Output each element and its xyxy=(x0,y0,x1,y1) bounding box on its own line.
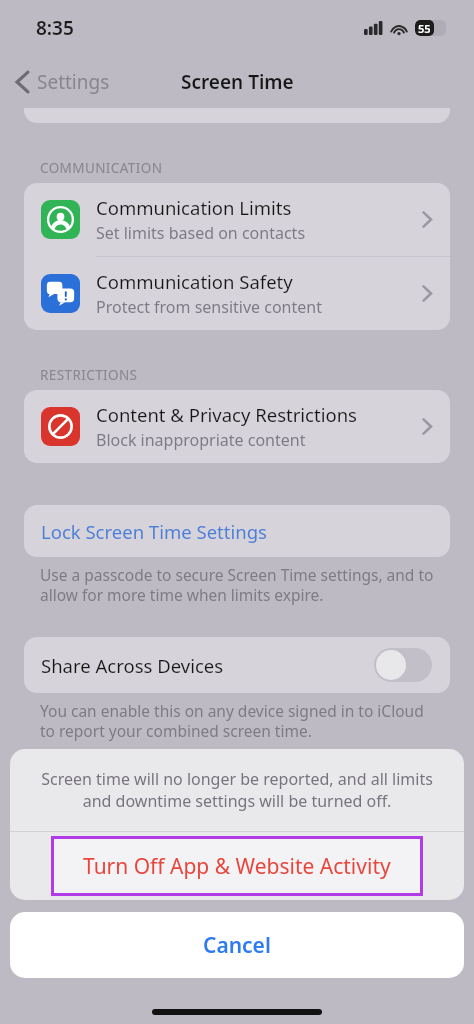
staticText: Cancel xyxy=(203,931,271,960)
staticText: 55 xyxy=(418,21,431,36)
button[interactable]: Communication Safety xyxy=(24,257,450,330)
staticText: Settings xyxy=(37,69,110,95)
staticText: Use a passcode to secure Screen Time set… xyxy=(40,564,434,605)
staticText: Screen Time xyxy=(181,69,294,95)
button[interactable]: Turn Off App & Website Activity xyxy=(10,832,464,900)
button[interactable]: Lock Screen Time Settings xyxy=(24,505,450,557)
button[interactable]: Content & Privacy Restrictions xyxy=(24,390,450,463)
staticText: RESTRICTIONS xyxy=(40,366,138,384)
button[interactable]: Share Across Devices xyxy=(24,637,450,693)
button[interactable]: Settings xyxy=(12,65,114,99)
staticText: Protect from sensitive content xyxy=(96,296,322,318)
staticText: Lock Screen Time Settings xyxy=(41,519,267,544)
staticText: Block inappropriate content xyxy=(96,429,306,451)
staticText: Communication Limits xyxy=(96,195,292,220)
staticText: Set Up Screen Time for Family xyxy=(41,783,301,808)
button[interactable]: Cancel xyxy=(10,912,464,978)
staticText: 8:35 xyxy=(36,15,74,41)
staticText: You can enable this on any device signed… xyxy=(40,700,434,741)
staticText: Screen time will no longer be reported, … xyxy=(32,768,442,812)
staticText: Turn Off App & Website Activity xyxy=(83,852,391,881)
staticText: Content & Privacy Restrictions xyxy=(96,402,357,427)
staticText: Communication Safety xyxy=(96,269,293,294)
staticText: Share Across Devices xyxy=(41,653,374,678)
staticText: Set limits based on contacts xyxy=(96,222,306,244)
button[interactable]: Communication Limits xyxy=(24,183,450,256)
staticText: COMMUNICATION xyxy=(40,159,163,177)
button[interactable]: Set Up Screen Time for Family xyxy=(24,769,450,821)
